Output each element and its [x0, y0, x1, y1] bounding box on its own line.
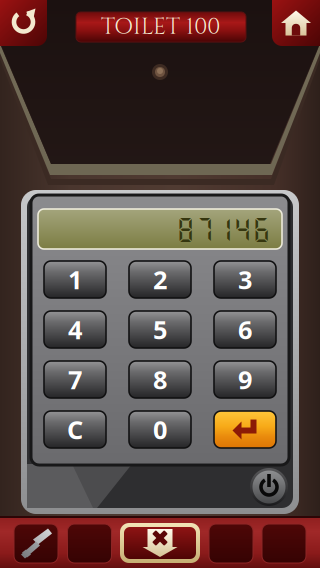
button[interactable]: 3 — [214, 261, 276, 298]
staticText: 87146 — [176, 213, 271, 244]
button[interactable]: 2 — [129, 261, 191, 298]
button[interactable]: Enter — [214, 411, 276, 448]
button[interactable]: 0 — [129, 411, 191, 448]
staticText: 4 — [68, 313, 82, 346]
staticText: 0 — [153, 413, 167, 446]
staticText: 2 — [153, 263, 167, 296]
button[interactable]: 7 — [44, 361, 106, 398]
button[interactable]: Home — [272, 0, 320, 46]
staticText: 3 — [238, 263, 252, 296]
button[interactable]: Power — [250, 468, 288, 506]
staticText: 7 — [68, 363, 82, 396]
staticText: 8 — [153, 363, 167, 396]
staticText: TOILET 100 — [101, 12, 221, 42]
staticText: 1 — [68, 263, 82, 296]
button[interactable]: 5 — [129, 311, 191, 348]
staticText: 9 — [238, 363, 252, 396]
staticText: C — [67, 413, 83, 446]
button[interactable]: Empty slot — [209, 524, 253, 563]
button[interactable]: 9 — [214, 361, 276, 398]
button[interactable]: Key item — [14, 524, 58, 563]
button[interactable]: Empty slot — [67, 524, 111, 563]
button[interactable]: 1 — [44, 261, 106, 298]
staticText: 6 — [238, 313, 252, 346]
button[interactable]: Empty slot — [262, 524, 306, 563]
button[interactable]: 8 — [129, 361, 191, 398]
button[interactable]: 4 — [44, 311, 106, 348]
button[interactable]: 6 — [214, 311, 276, 348]
button[interactable]: Close — [120, 523, 200, 563]
button[interactable]: Restart — [0, 0, 47, 46]
button[interactable]: C — [44, 411, 106, 448]
staticText: 5 — [153, 313, 167, 346]
